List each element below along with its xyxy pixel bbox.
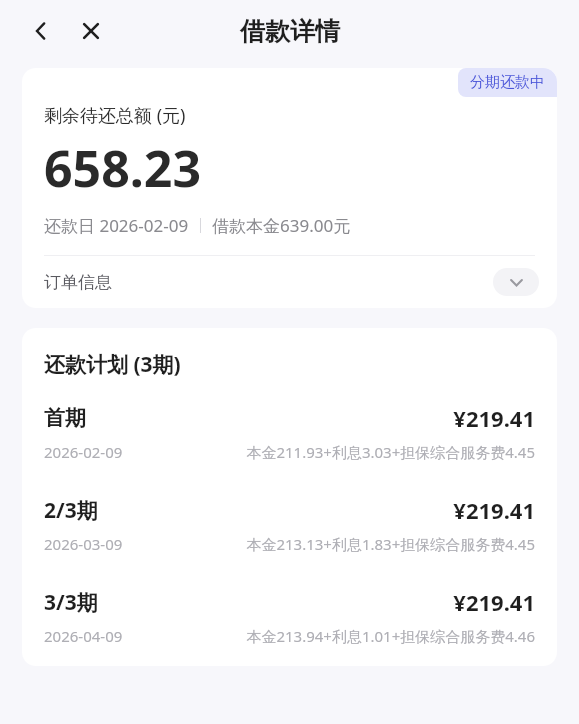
staticText: ¥219.41 — [453, 403, 535, 433]
staticText: 借款详情 — [240, 16, 340, 47]
staticText: 本金213.94+利息1.01+担保综合服务费4.46 — [246, 626, 535, 646]
staticText: 2026-02-09 — [44, 442, 123, 462]
staticText: 剩余待还总额 (元) — [44, 103, 186, 128]
staticText: 本金213.13+利息1.83+担保综合服务费4.45 — [246, 534, 535, 554]
staticText: 658.23 — [44, 134, 202, 202]
staticText: 还款日 2026-02-09 — [44, 214, 189, 237]
staticText: 2/3期 — [44, 496, 98, 525]
other: Expand order info — [493, 268, 539, 296]
staticText: 借款本金639.00元 — [212, 214, 351, 237]
staticText: 订单信息 — [44, 272, 112, 293]
staticText: 分期还款中 — [470, 73, 545, 92]
button[interactable]: 订单信息 — [22, 256, 557, 308]
button[interactable]: 3/3期 — [44, 587, 535, 646]
button[interactable]: Close — [72, 12, 110, 50]
button[interactable]: 首期 — [44, 403, 535, 462]
button[interactable]: 分期还款中 — [458, 68, 557, 97]
staticText: 本金211.93+利息3.03+担保综合服务费4.45 — [246, 442, 535, 462]
staticText: 2026-03-09 — [44, 534, 123, 554]
staticText: 还款计划 (3期) — [44, 350, 181, 379]
staticText: ¥219.41 — [453, 495, 535, 525]
staticText: 首期 — [44, 405, 86, 431]
staticText: ¥219.41 — [453, 587, 535, 617]
button[interactable]: Back — [22, 12, 60, 50]
button[interactable]: 2/3期 — [44, 495, 535, 554]
staticText: 3/3期 — [44, 588, 98, 617]
staticText: 2026-04-09 — [44, 626, 123, 646]
